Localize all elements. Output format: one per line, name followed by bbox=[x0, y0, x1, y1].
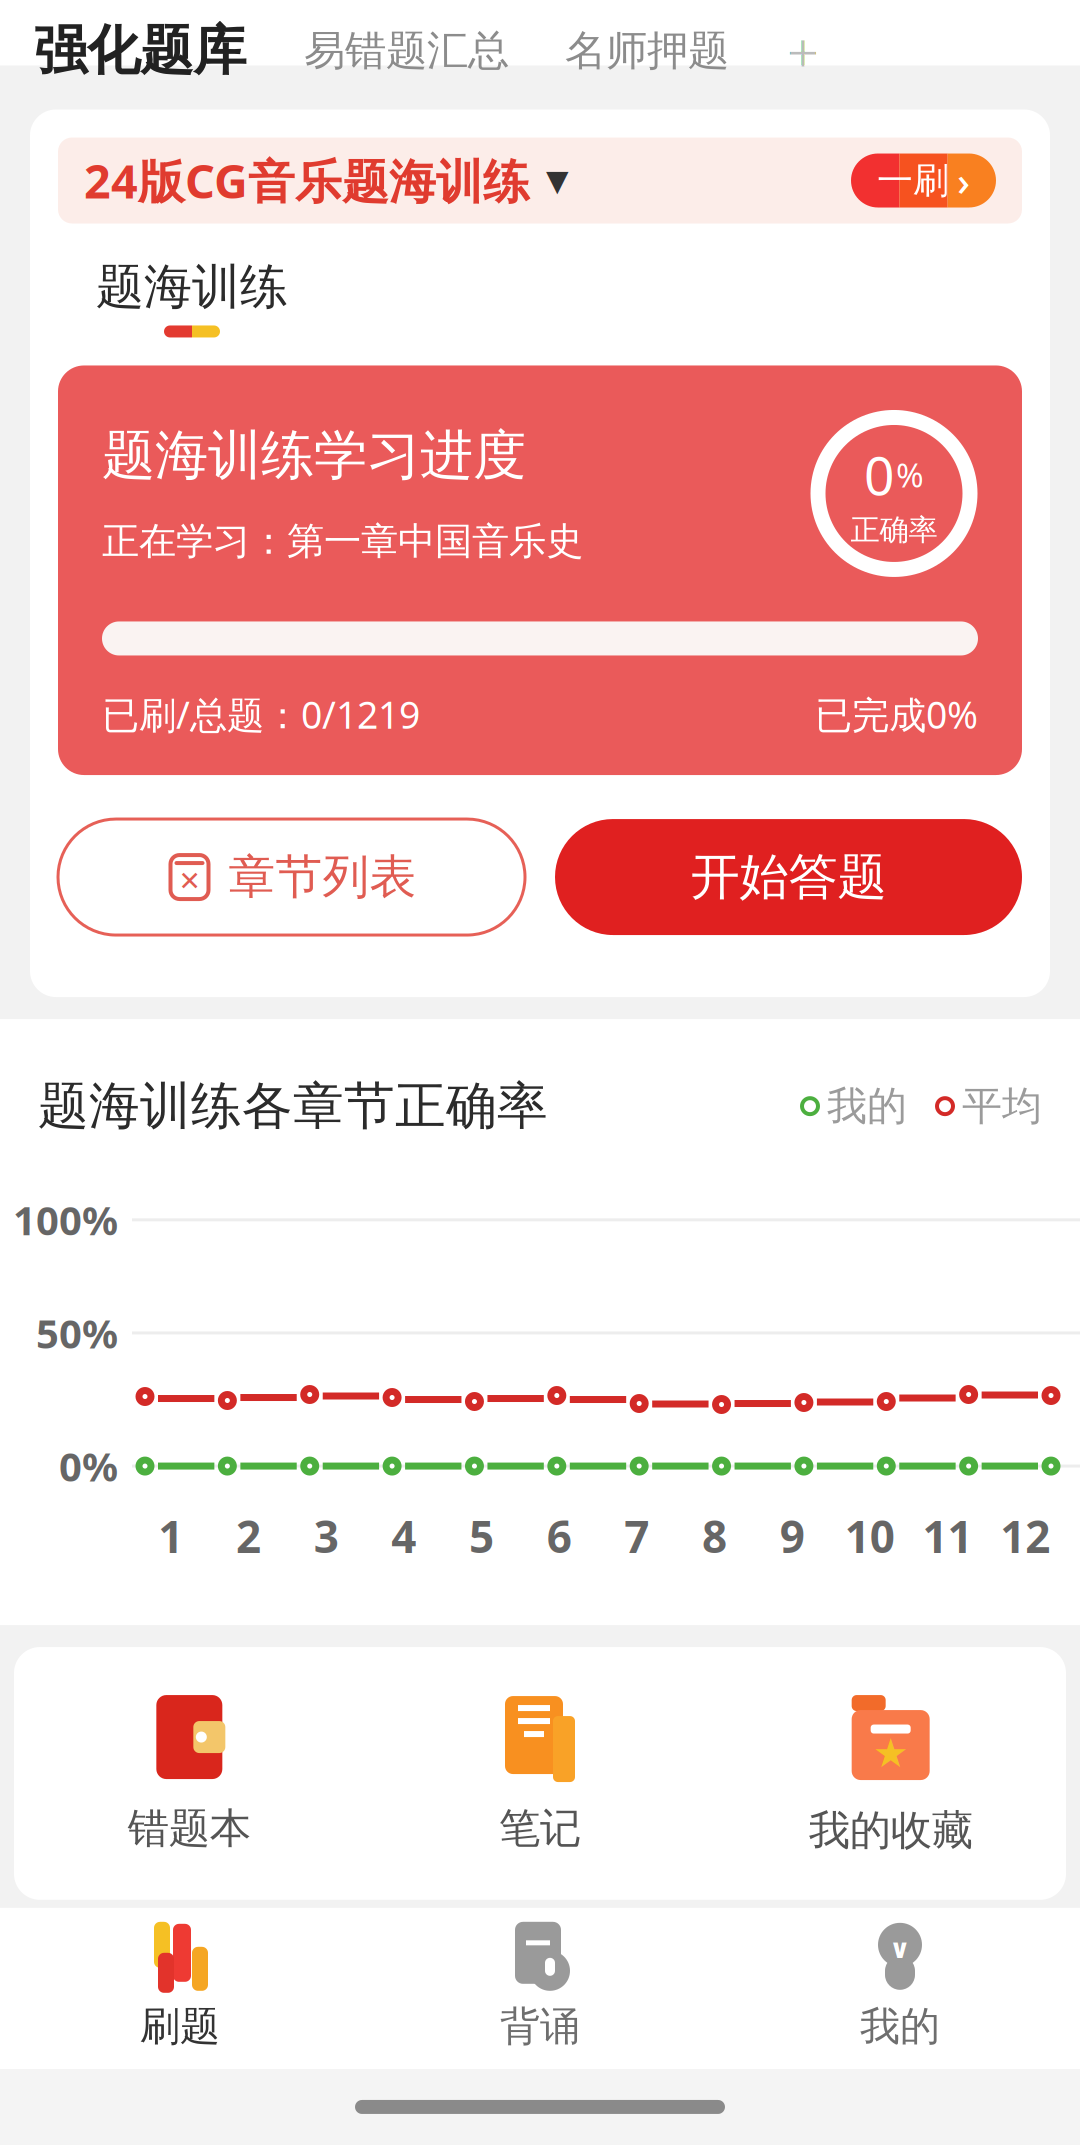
staticText: 我的 bbox=[827, 1082, 907, 1131]
staticText: 名师押题 bbox=[565, 25, 729, 76]
button[interactable]: 名师押题 bbox=[565, 25, 729, 76]
button[interactable]: 24版CG音乐题海训练 bbox=[58, 137, 1022, 223]
staticText: 11 bbox=[922, 1507, 972, 1565]
button[interactable]: 错题本 bbox=[14, 1649, 365, 1898]
staticText: 正在学习：第一章中国音乐史 bbox=[102, 518, 583, 564]
staticText: 7 bbox=[624, 1507, 649, 1565]
button[interactable]: 题海训练 bbox=[96, 257, 288, 337]
staticText: 已刷/总题：0/1219 bbox=[102, 689, 420, 739]
button[interactable]: ✕ bbox=[58, 819, 525, 935]
staticText: 0% bbox=[59, 1439, 118, 1493]
button[interactable]: 添加 bbox=[775, 23, 831, 79]
staticText: 章节列表 bbox=[228, 848, 416, 906]
button[interactable]: ∨ bbox=[720, 1924, 1080, 2051]
button[interactable]: 刷题 bbox=[0, 1924, 360, 2051]
staticText: 题海训练学习进度 bbox=[102, 423, 526, 488]
staticText: 刷题 bbox=[140, 2002, 220, 2051]
staticText: 平均 bbox=[962, 1082, 1042, 1131]
staticText: 3 bbox=[314, 1507, 339, 1565]
staticText: 24版CG音乐题海训练 bbox=[84, 149, 530, 211]
staticText: 9 bbox=[780, 1507, 805, 1565]
button[interactable]: 背诵 bbox=[360, 1924, 720, 2051]
staticText: 一刷 bbox=[877, 158, 949, 203]
staticText: 正确率 bbox=[850, 512, 937, 548]
button[interactable]: 强化题库 bbox=[34, 18, 246, 83]
button[interactable]: 易错题汇总 bbox=[304, 25, 509, 76]
staticText: 10 bbox=[845, 1507, 895, 1565]
staticText: 0 bbox=[864, 439, 895, 510]
staticText: 强化题库 bbox=[34, 18, 246, 83]
staticText: 错题本 bbox=[128, 1803, 251, 1854]
staticText: + bbox=[787, 14, 819, 88]
staticText: 我的收藏 bbox=[809, 1805, 973, 1856]
staticText: 题海训练 bbox=[96, 257, 288, 316]
staticText: 5 bbox=[469, 1507, 494, 1565]
staticText: 1 bbox=[158, 1507, 183, 1565]
button[interactable]: 开始答题 bbox=[555, 819, 1022, 935]
staticText: ▼ bbox=[546, 164, 569, 197]
staticText: 笔记 bbox=[499, 1803, 581, 1854]
staticText: 6 bbox=[547, 1507, 572, 1565]
staticText: 4 bbox=[391, 1507, 416, 1565]
staticText: 易错题汇总 bbox=[304, 25, 509, 76]
staticText: 12 bbox=[1000, 1507, 1050, 1565]
staticText: 2 bbox=[236, 1507, 261, 1565]
staticText: % bbox=[896, 452, 924, 497]
staticText: 100% bbox=[13, 1193, 118, 1246]
staticText: 我的 bbox=[860, 2002, 940, 2051]
staticText: ∨ bbox=[889, 1934, 911, 1964]
staticText: ★ bbox=[873, 1730, 909, 1776]
staticText: 8 bbox=[702, 1507, 727, 1565]
staticText: 50% bbox=[36, 1306, 118, 1359]
staticText: 题海训练各章节正确率 bbox=[38, 1075, 548, 1137]
staticText: 已完成0% bbox=[815, 689, 978, 739]
button[interactable]: ★ bbox=[715, 1647, 1066, 1900]
staticText: 开始答题 bbox=[690, 847, 886, 907]
staticText: ✕ bbox=[178, 866, 200, 896]
button[interactable]: 笔记 bbox=[365, 1649, 715, 1898]
staticText: › bbox=[957, 154, 970, 207]
staticText: 背诵 bbox=[500, 2002, 580, 2051]
